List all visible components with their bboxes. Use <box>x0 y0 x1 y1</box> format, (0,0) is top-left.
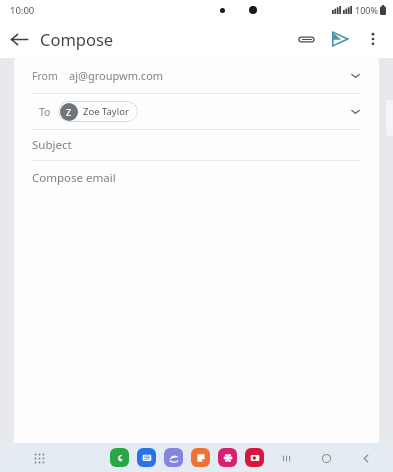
staticText: From <box>32 69 58 83</box>
button[interactable]: Back <box>353 445 379 471</box>
button[interactable]: Z <box>58 101 138 122</box>
button[interactable]: Notes <box>191 448 210 467</box>
staticText: Compose email <box>32 170 116 186</box>
button[interactable]: More options <box>357 23 389 55</box>
button[interactable]: Internet <box>164 448 183 467</box>
button[interactable]: Camera <box>245 448 264 467</box>
staticText: Compose <box>40 28 114 50</box>
button[interactable]: Navigate up <box>0 20 38 58</box>
button[interactable]: Attach file <box>289 22 323 56</box>
staticText: 10:00 <box>10 4 35 17</box>
button[interactable]: Send <box>323 22 357 56</box>
staticText: Zoe Taylor <box>83 105 129 118</box>
button[interactable]: Phone <box>110 448 129 467</box>
button[interactable]: Home <box>313 445 339 471</box>
button[interactable]: From <box>14 58 379 93</box>
staticText: To <box>39 105 51 119</box>
button[interactable]: Compose email <box>14 161 379 195</box>
button[interactable]: Messages <box>137 448 156 467</box>
staticText: 100% <box>355 4 378 16</box>
staticText: aj@groupwm.com <box>69 68 164 83</box>
staticText: Z <box>66 106 72 118</box>
button[interactable]: Gallery <box>218 448 237 467</box>
staticText: Subject <box>32 137 72 153</box>
button[interactable]: All apps <box>28 447 50 469</box>
button[interactable]: Recent apps <box>273 445 299 471</box>
button[interactable]: Subject <box>14 130 379 160</box>
button[interactable]: To <box>14 94 379 129</box>
